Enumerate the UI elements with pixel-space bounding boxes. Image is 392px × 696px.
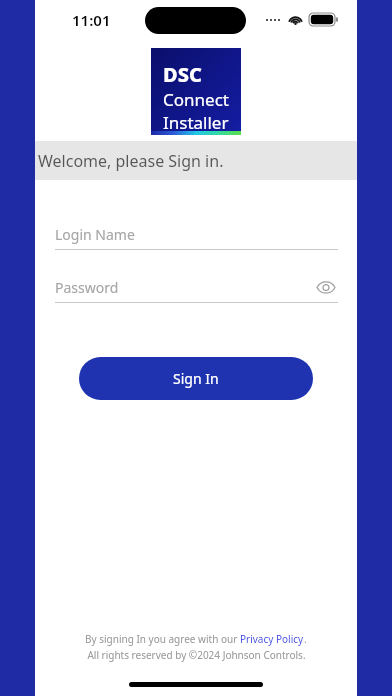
button[interactable]: Show password bbox=[313, 274, 339, 300]
staticText: By signing In you agree with our bbox=[85, 632, 240, 646]
staticText: Welcome, please Sign in. bbox=[38, 150, 224, 172]
staticText: Installer bbox=[163, 111, 229, 134]
staticText: DSC bbox=[163, 61, 202, 88]
staticText: Password bbox=[55, 278, 119, 297]
staticText: 11:01 bbox=[72, 10, 111, 30]
button[interactable]: Privacy Policy bbox=[240, 632, 304, 646]
button[interactable]: Password bbox=[55, 275, 338, 303]
staticText: Sign In bbox=[173, 369, 219, 388]
staticText: All rights reserved by ©2024 Johnson Con… bbox=[87, 648, 306, 662]
staticText: Privacy Policy bbox=[240, 632, 304, 646]
staticText: Login Name bbox=[55, 225, 135, 244]
button[interactable]: Login Name bbox=[55, 222, 338, 250]
staticText: . bbox=[304, 632, 307, 646]
button[interactable]: Sign In bbox=[79, 357, 313, 400]
staticText: Connect bbox=[163, 88, 229, 111]
